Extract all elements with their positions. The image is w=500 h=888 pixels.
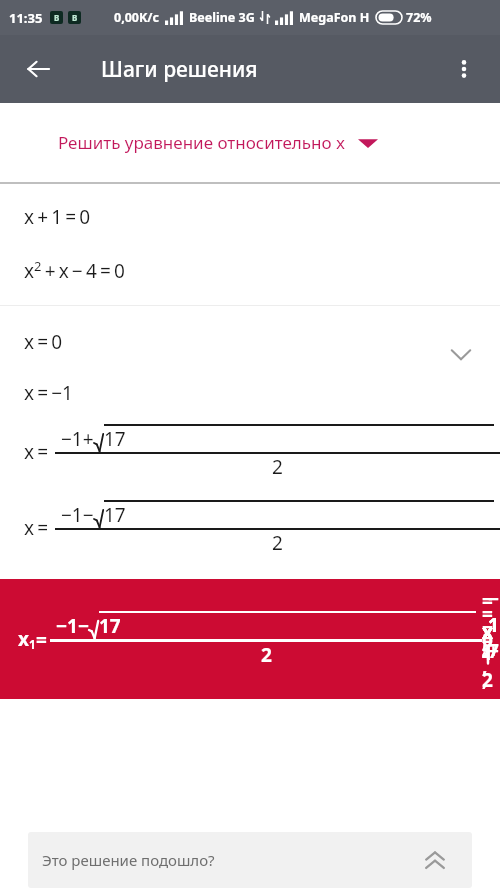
staticText: B bbox=[54, 12, 60, 23]
staticText: 2 bbox=[272, 454, 283, 480]
staticText: 72% bbox=[406, 9, 432, 26]
staticText: −1− bbox=[56, 613, 89, 639]
staticText: 17 bbox=[104, 502, 126, 528]
staticText: MegaFon H bbox=[299, 9, 370, 26]
staticText: −1+ bbox=[61, 426, 94, 452]
staticText: Это решение подошло? bbox=[42, 850, 215, 870]
button[interactable]: Back bbox=[16, 47, 60, 91]
button[interactable]: Это решение подошло? bbox=[28, 832, 472, 888]
button[interactable]: Решить уравнение относительно x bbox=[0, 103, 500, 182]
staticText: 17 bbox=[104, 426, 126, 452]
staticText: 2 bbox=[272, 530, 283, 556]
staticText: x = −1 bbox=[24, 380, 73, 406]
staticText: B bbox=[72, 12, 78, 23]
staticText: x1 bbox=[18, 626, 36, 653]
staticText: Beeline 3G bbox=[189, 9, 255, 26]
staticText: 17 bbox=[99, 613, 121, 639]
staticText: −1− bbox=[61, 502, 94, 528]
staticText: Шаги решения bbox=[101, 55, 258, 84]
staticText: x = bbox=[24, 439, 49, 465]
staticText: x = 0 bbox=[24, 329, 63, 355]
staticText: 2 bbox=[261, 642, 272, 668]
staticText: x + 1 = 0 bbox=[24, 204, 91, 230]
staticText: Решить уравнение относительно x bbox=[58, 131, 346, 154]
staticText: x2 + x − 4 = 0 bbox=[24, 257, 125, 283]
staticText: x = bbox=[24, 515, 49, 541]
staticText: 11:35 bbox=[9, 9, 43, 27]
staticText: = bbox=[36, 627, 47, 653]
staticText: 0,00K/c bbox=[114, 9, 159, 26]
button[interactable]: More options bbox=[442, 47, 486, 91]
button[interactable]: Collapse bbox=[439, 332, 483, 376]
